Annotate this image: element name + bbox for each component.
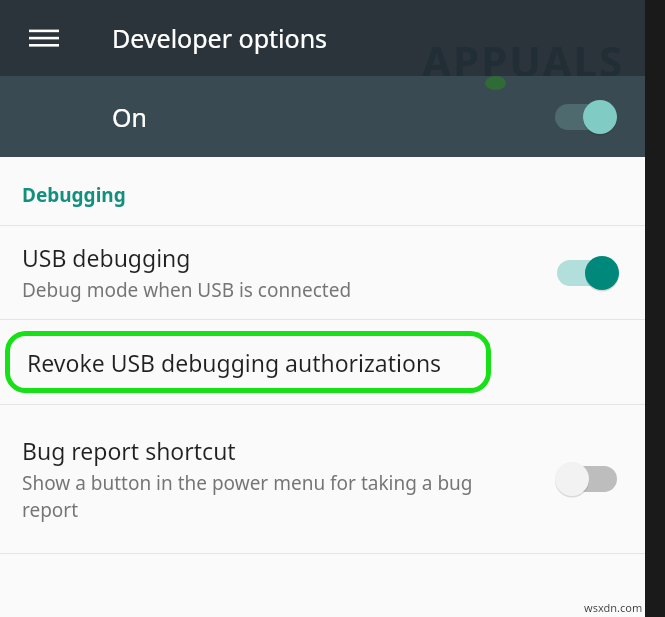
button[interactable]: Revoke USB debugging authorizations (5, 331, 491, 393)
staticText: Bug report shortcut (22, 435, 236, 466)
button[interactable]: Open navigation menu (22, 16, 66, 60)
staticText: On (112, 100, 147, 134)
button[interactable]: USB debugging (0, 226, 645, 319)
staticText: Show a button in the power menu for taki… (22, 470, 505, 523)
staticText: Revoke USB debugging authorizations (27, 347, 442, 378)
button[interactable]: Bug report shortcut (0, 405, 645, 552)
staticText: Debug mode when USB is connected (22, 277, 352, 303)
button[interactable]: Toggle on (557, 256, 619, 290)
staticText: Developer options (112, 21, 328, 55)
button[interactable]: On (0, 76, 645, 157)
staticText: Debugging (22, 182, 126, 208)
button[interactable]: Toggle on (555, 100, 617, 134)
button[interactable]: Toggle off (555, 462, 617, 496)
staticText: wsxdn.com (584, 600, 643, 615)
staticText: APPUALS (422, 32, 625, 89)
staticText: USB debugging (22, 242, 191, 273)
